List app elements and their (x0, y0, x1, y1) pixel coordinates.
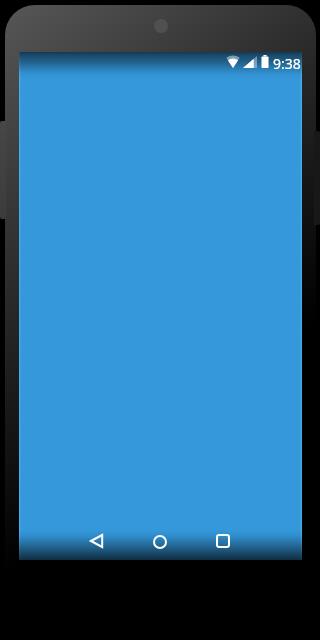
button[interactable]: Back (72, 526, 120, 556)
staticText: 9:38 (273, 54, 301, 73)
button[interactable]: Recent apps (199, 526, 247, 556)
button[interactable]: Home (136, 527, 184, 557)
